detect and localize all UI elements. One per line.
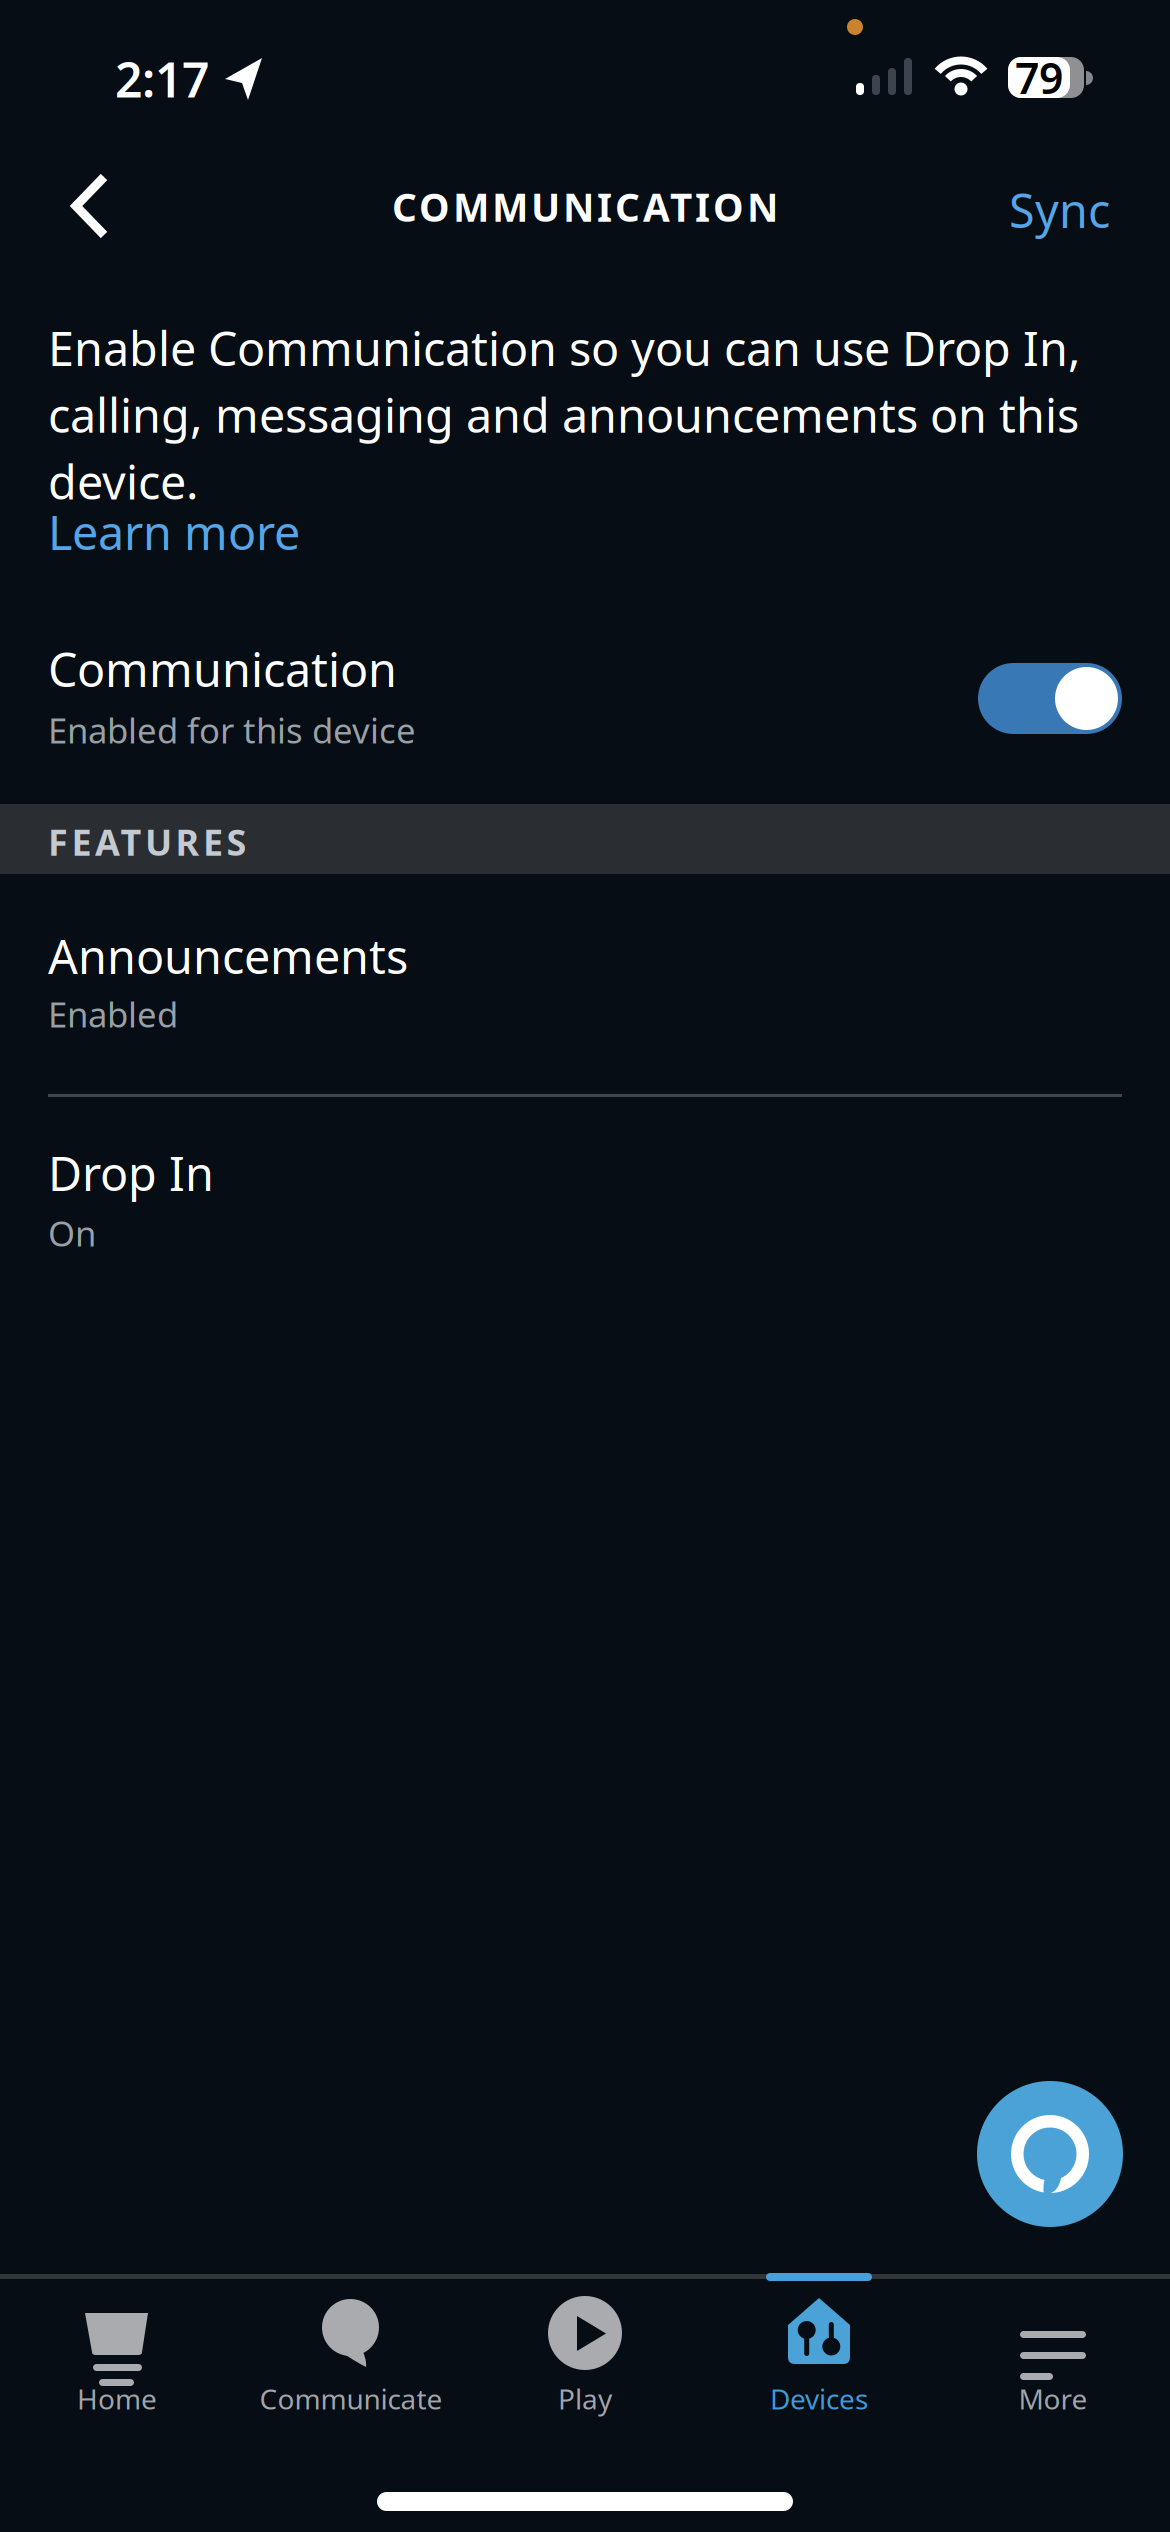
button[interactable]: Announcements (48, 925, 1122, 1045)
staticText: 79 (1015, 49, 1063, 106)
staticText: On (48, 1210, 96, 1256)
button[interactable] (82, 2296, 152, 2372)
staticText: Sync (1009, 179, 1110, 241)
staticText: Communication (48, 638, 397, 700)
staticText: Devices (770, 2380, 868, 2417)
button[interactable] (784, 2296, 854, 2366)
button[interactable] (548, 2296, 622, 2370)
button[interactable] (978, 663, 1122, 734)
staticText: Announcements (48, 925, 408, 987)
staticText: Communicate (259, 2380, 442, 2417)
staticText: 2:17 (115, 47, 209, 111)
button[interactable] (322, 2299, 386, 2369)
button[interactable] (70, 172, 114, 240)
button[interactable] (1020, 2310, 1086, 2359)
staticText: More (1018, 2380, 1087, 2417)
staticText: COMMUNICATION (392, 181, 778, 232)
staticText: Enable Communication so you can use Drop… (48, 317, 1081, 512)
button[interactable] (977, 2081, 1123, 2227)
staticText: Home (77, 2380, 157, 2417)
staticText: Play (558, 2380, 612, 2417)
button[interactable]: Learn more (48, 501, 300, 563)
staticText: Drop In (48, 1142, 214, 1204)
button[interactable]: Sync (1009, 179, 1110, 241)
staticText: Enabled (48, 991, 178, 1037)
staticText: FEATURES (48, 818, 246, 866)
staticText: Learn more (48, 501, 300, 563)
staticText: Enabled for this device (48, 707, 416, 753)
button[interactable]: Drop In (48, 1142, 1122, 1262)
